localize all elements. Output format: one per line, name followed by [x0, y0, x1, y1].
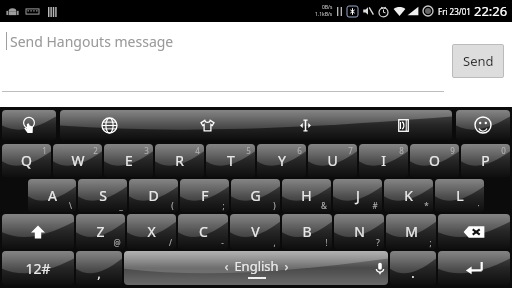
staticText: F: [201, 186, 209, 205]
button[interactable]: ‹: [124, 251, 388, 285]
button[interactable]: Input method: [2, 110, 56, 140]
button[interactable]: P: [461, 144, 510, 177]
staticText: D: [148, 186, 159, 205]
staticText: ›: [284, 257, 289, 275]
button[interactable]: L: [435, 179, 484, 212]
button[interactable]: Enter: [438, 251, 510, 285]
button[interactable]: K: [384, 179, 433, 212]
button[interactable]: globe: [60, 110, 452, 140]
staticText: ,: [97, 264, 101, 282]
staticText: 3: [144, 145, 149, 156]
button[interactable]: M: [386, 214, 436, 249]
staticText: 1: [42, 145, 47, 156]
button[interactable]: U: [308, 144, 357, 177]
button[interactable]: D: [129, 179, 178, 212]
staticText: -: [221, 237, 224, 248]
staticText: Q: [21, 151, 32, 170]
staticText: \: [69, 200, 72, 211]
button[interactable]: F: [180, 179, 229, 212]
staticText: Y: [278, 151, 286, 170]
staticText: Send Hangouts message: [10, 32, 174, 51]
button[interactable]: Send: [452, 44, 504, 78]
staticText: #: [372, 200, 378, 211]
button[interactable]: ,: [76, 251, 122, 285]
staticText: @: [113, 237, 121, 248]
staticText: I: [381, 151, 386, 170]
button[interactable]: Send Hangouts message: [0, 30, 452, 92]
button[interactable]: dict: [354, 110, 452, 140]
staticText: *: [424, 200, 429, 211]
button[interactable]: Q: [2, 144, 51, 177]
staticText: C: [199, 222, 208, 241]
staticText: 5: [246, 145, 251, 156]
staticText: !: [325, 237, 328, 248]
staticText: V: [251, 222, 260, 241]
button[interactable]: Shift: [2, 214, 74, 249]
button[interactable]: B: [282, 214, 332, 249]
staticText: L: [456, 186, 464, 205]
staticText: U: [327, 151, 338, 170]
staticText: S: [99, 186, 107, 205]
button[interactable]: Emoji: [456, 110, 510, 140]
button[interactable]: E: [104, 144, 153, 177]
staticText: J: [356, 186, 360, 205]
button[interactable]: shirt: [158, 110, 256, 140]
staticText: Send: [463, 52, 494, 70]
staticText: ?: [376, 237, 380, 248]
staticText: 0B/s: [322, 4, 333, 11]
button[interactable]: .: [390, 251, 436, 285]
button[interactable]: 12#: [2, 251, 74, 285]
button[interactable]: Backspace: [438, 214, 510, 249]
button[interactable]: G: [231, 179, 280, 212]
staticText: Fri 23/01: [438, 6, 471, 17]
staticText: ): [273, 200, 276, 211]
staticText: 22:26: [474, 2, 508, 20]
staticText: H: [301, 186, 312, 205]
button[interactable]: Z: [76, 214, 125, 249]
button[interactable]: V: [230, 214, 280, 249]
staticText: 9: [450, 145, 455, 156]
staticText: 4: [195, 145, 200, 156]
staticText: ;: [222, 200, 225, 211]
button[interactable]: O: [410, 144, 459, 177]
button[interactable]: I: [359, 144, 408, 177]
button[interactable]: C: [178, 214, 228, 249]
button[interactable]: A: [28, 179, 76, 212]
staticText: Z: [96, 222, 105, 241]
staticText: ,: [273, 237, 276, 248]
staticText: G: [250, 186, 261, 205]
staticText: ·: [477, 200, 480, 211]
staticText: 7: [348, 145, 353, 156]
staticText: English: [234, 257, 279, 275]
staticText: 2: [93, 145, 98, 156]
staticText: T: [227, 151, 235, 170]
staticText: &: [321, 200, 327, 211]
staticText: A: [48, 186, 57, 205]
staticText: R: [175, 151, 184, 170]
staticText: K: [404, 186, 413, 205]
staticText: 0: [501, 145, 506, 156]
staticText: O: [429, 151, 440, 170]
staticText: P: [481, 151, 490, 170]
button[interactable]: Y: [257, 144, 306, 177]
staticText: /: [169, 237, 172, 248]
button[interactable]: T: [206, 144, 255, 177]
staticText: 12#: [25, 259, 51, 278]
button[interactable]: J: [333, 179, 382, 212]
staticText: _: [119, 200, 123, 211]
staticText: E: [125, 151, 133, 170]
button[interactable]: S: [78, 179, 127, 212]
button[interactable]: W: [53, 144, 102, 177]
button[interactable]: H: [282, 179, 331, 212]
button[interactable]: globe: [60, 110, 158, 140]
staticText: 1.1kB/s: [315, 11, 333, 18]
staticText: N: [354, 222, 365, 241]
staticText: ;: [429, 237, 432, 248]
button[interactable]: R: [155, 144, 204, 177]
staticText: 6: [297, 145, 302, 156]
button[interactable]: N: [334, 214, 384, 249]
button[interactable]: X: [127, 214, 176, 249]
staticText: B: [302, 222, 312, 241]
staticText: ‹: [224, 257, 229, 275]
button[interactable]: cursor: [256, 110, 354, 140]
